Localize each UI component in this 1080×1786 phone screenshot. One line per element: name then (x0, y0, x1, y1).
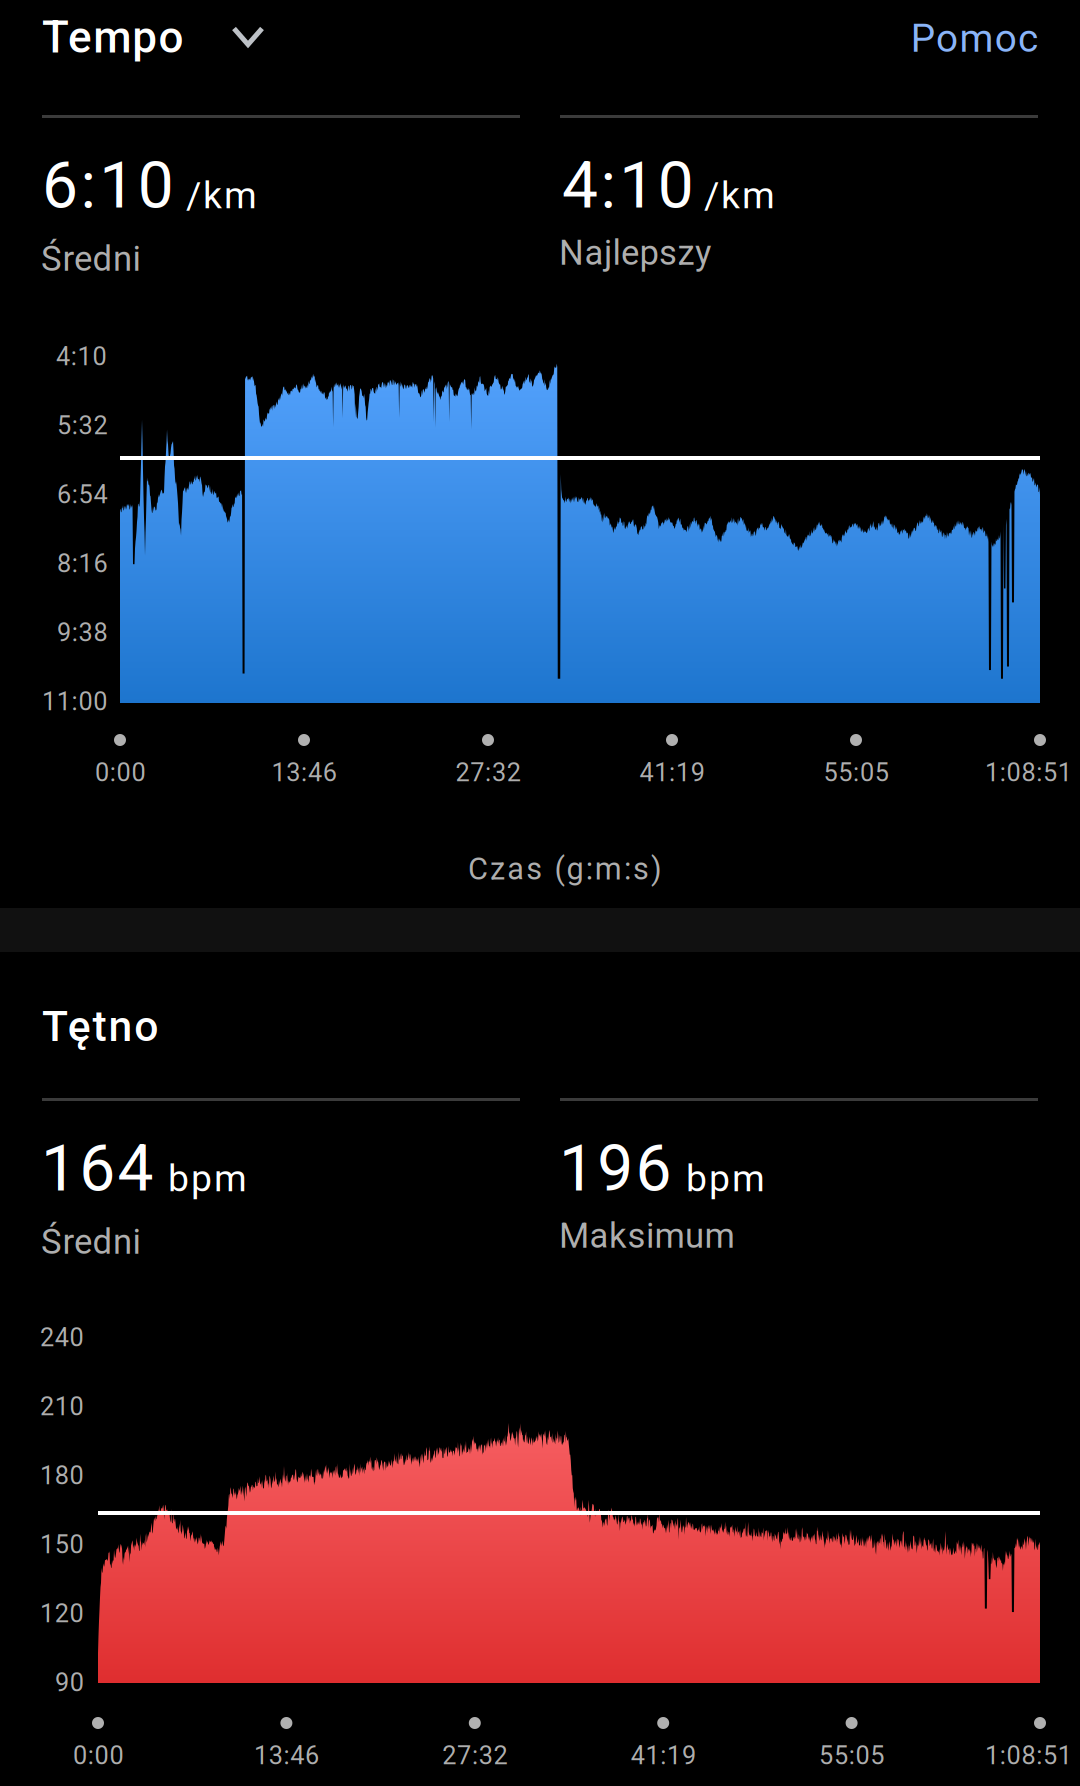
staticText: 90 (55, 1668, 84, 1697)
staticText: 5:32 (57, 411, 107, 440)
staticText: 0:00 (95, 758, 145, 787)
staticText: 6:10 (42, 148, 174, 223)
button[interactable]: Pomoc (890, 0, 1040, 72)
staticText: 240 (40, 1323, 84, 1352)
staticText: 196 (559, 1131, 672, 1206)
staticText: 180 (40, 1461, 84, 1490)
staticText: 1:08:51 (985, 758, 1072, 787)
staticText: 164 (41, 1131, 154, 1206)
staticText: 55:05 (823, 758, 889, 787)
staticText: Tempo (42, 12, 183, 63)
staticText: /km (186, 174, 257, 217)
staticText: Pomoc (911, 16, 1038, 61)
staticText: 55:05 (819, 1741, 884, 1770)
staticText: 41:19 (631, 1741, 696, 1770)
staticText: Czas (g:m:s) (468, 851, 662, 887)
button[interactable]: Tempo (42, 0, 274, 72)
staticText: 4:10 (56, 342, 106, 371)
staticText: 11:00 (42, 687, 107, 716)
staticText: Tętno (42, 1001, 158, 1051)
staticText: 210 (40, 1392, 84, 1421)
staticText: Najlepszy (559, 233, 711, 273)
staticText: 120 (40, 1599, 84, 1628)
staticText: 150 (40, 1530, 84, 1559)
staticText: /km (704, 174, 775, 217)
staticText: Średni (41, 239, 140, 279)
staticText: 0:00 (73, 1741, 123, 1770)
staticText: 27:32 (442, 1741, 507, 1770)
staticText: 13:46 (271, 758, 337, 787)
staticText: Średni (41, 1222, 140, 1262)
staticText: bpm (168, 1157, 247, 1200)
staticText: 13:46 (254, 1741, 319, 1770)
staticText: 4:10 (562, 148, 694, 223)
staticText: 1:08:51 (985, 1741, 1072, 1770)
staticText: bpm (686, 1157, 765, 1200)
staticText: Maksimum (559, 1216, 734, 1256)
staticText: 8:16 (57, 549, 107, 578)
staticText: 27:32 (455, 758, 521, 787)
staticText: 9:38 (57, 618, 107, 647)
staticText: 6:54 (57, 480, 107, 509)
staticText: 41:19 (639, 758, 705, 787)
